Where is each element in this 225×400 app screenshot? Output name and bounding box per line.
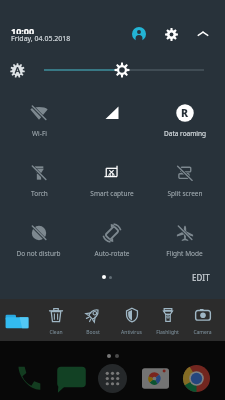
button[interactable]: EDIT: [192, 272, 210, 283]
button[interactable]: User: [126, 21, 152, 47]
button[interactable]: Mobile data: [75, 104, 148, 142]
button[interactable]: Chrome: [180, 362, 212, 394]
button[interactable]: Messages: [55, 362, 87, 394]
button[interactable]: File manager: [4, 308, 30, 334]
button[interactable]: Wi-Fi: [2, 104, 75, 142]
staticText: Wi-Fi: [32, 129, 47, 138]
staticText: Boost: [86, 329, 100, 336]
button[interactable]: Settings: [158, 21, 184, 47]
button[interactable]: Flashlight: [149, 307, 185, 339]
button[interactable]: Apps: [96, 362, 128, 394]
staticText: Antivirus: [121, 329, 142, 336]
staticText: Flashlight: [156, 329, 179, 336]
staticText: R: [181, 106, 189, 120]
button[interactable]: Smart capture: [75, 164, 148, 202]
button[interactable]: Brightness: [44, 60, 204, 80]
button[interactable]: Boost: [75, 307, 111, 339]
button[interactable]: Auto-rotate: [75, 224, 148, 262]
staticText: EDIT: [192, 272, 210, 283]
staticText: Data roaming: [164, 129, 206, 138]
staticText: Camera: [193, 329, 212, 336]
staticText: 10:00: [11, 25, 35, 34]
button[interactable]: Antivirus: [113, 307, 149, 339]
staticText: Split screen: [167, 189, 203, 198]
button[interactable]: Clean: [38, 307, 74, 339]
staticText: Friday, 04.05.2018: [11, 34, 71, 43]
button[interactable]: Split screen: [148, 164, 221, 202]
button[interactable]: R: [148, 104, 221, 142]
staticText: Auto-rotate: [94, 249, 130, 258]
button[interactable]: Camera: [184, 307, 220, 339]
button[interactable]: Photos: [139, 362, 171, 394]
staticText: Do not disturb: [16, 249, 61, 258]
button[interactable]: Torch: [2, 164, 75, 202]
staticText: Torch: [31, 189, 48, 198]
staticText: Smart capture: [90, 189, 134, 198]
button[interactable]: Collapse: [190, 21, 216, 47]
staticText: Flight Mode: [166, 249, 203, 258]
button[interactable]: Do not disturb: [2, 224, 75, 262]
button[interactable]: Flight Mode: [148, 224, 221, 262]
button[interactable]: Phone: [12, 362, 44, 394]
staticText: Clean: [49, 329, 63, 336]
